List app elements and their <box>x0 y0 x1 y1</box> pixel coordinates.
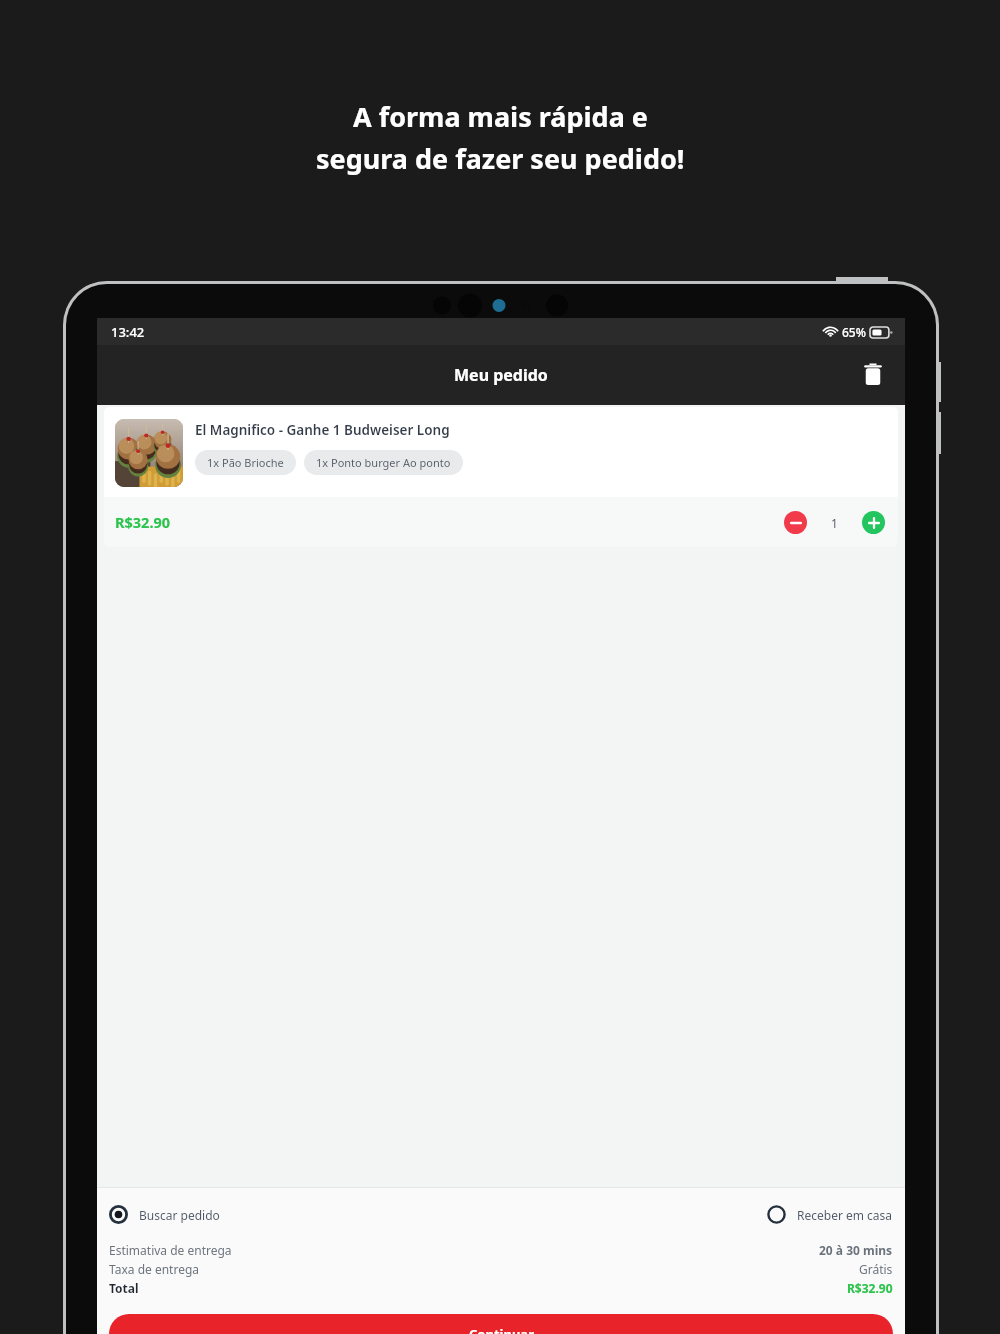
staticText: 13:42 <box>111 323 145 341</box>
staticText: R$32.90 <box>115 512 171 532</box>
staticText: 20 à 30 mins <box>819 1242 893 1258</box>
button[interactable]: Receber em casa <box>767 1205 893 1224</box>
staticText: 1x Ponto burger Ao ponto <box>316 455 451 470</box>
button[interactable]: Buscar pedido <box>109 1205 220 1224</box>
staticText: Grátis <box>859 1261 893 1277</box>
staticText: El Magnifico - Ganhe 1 Budweiser Long <box>195 421 450 439</box>
staticText: A forma mais rápida e <box>353 98 648 135</box>
staticText: Taxa de entrega <box>109 1261 200 1277</box>
staticText: 65% <box>842 324 866 340</box>
staticText: R$32.90 <box>847 1280 893 1296</box>
button[interactable]: Diminuir quantidade <box>784 511 807 534</box>
staticText: Buscar pedido <box>139 1207 220 1223</box>
button[interactable]: Limpar pedido <box>851 353 895 397</box>
button[interactable]: Continuar <box>109 1314 893 1334</box>
staticText: Meu pedido <box>454 364 548 386</box>
button[interactable]: El Magnifico - Ganhe 1 Budweiser Long <box>104 407 898 547</box>
staticText: Continuar <box>469 1325 534 1334</box>
button[interactable]: Aumentar quantidade <box>862 511 885 534</box>
staticText: segura de fazer seu pedido! <box>316 140 685 177</box>
staticText: Receber em casa <box>797 1207 893 1223</box>
staticText: 1 <box>831 515 838 531</box>
staticText: Total <box>109 1280 139 1296</box>
staticText: Estimativa de entrega <box>109 1242 232 1258</box>
staticText: 1x Pão Brioche <box>207 455 284 470</box>
